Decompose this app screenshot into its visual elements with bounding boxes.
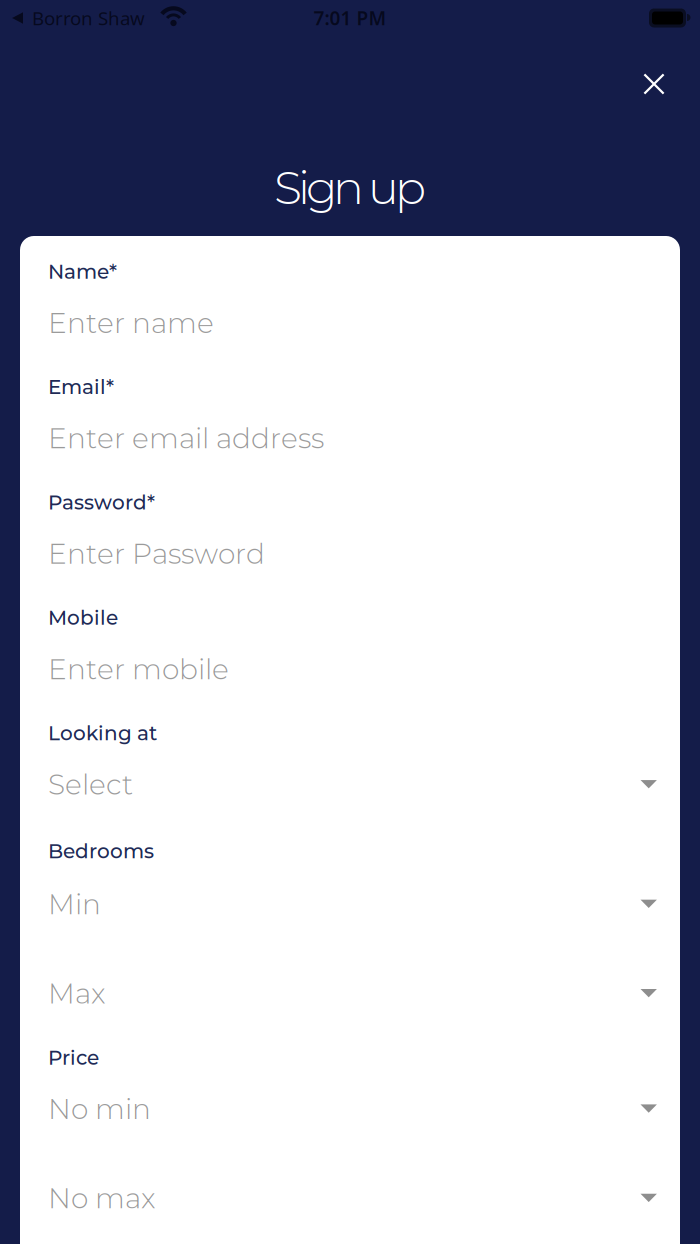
staticText: Name* bbox=[48, 259, 117, 284]
staticText: Looking at bbox=[48, 721, 157, 745]
staticText: Sign up bbox=[274, 159, 426, 216]
button[interactable]: No max bbox=[48, 1181, 657, 1215]
staticText: Enter name bbox=[48, 306, 214, 340]
button[interactable]: Borron Shaw bbox=[12, 5, 145, 31]
staticText: Price bbox=[48, 1045, 99, 1070]
staticText: Select bbox=[48, 767, 133, 802]
button[interactable]: Min bbox=[48, 887, 657, 921]
button[interactable]: Enter name bbox=[48, 306, 657, 340]
staticText: Mobile bbox=[48, 605, 118, 630]
staticText: Email* bbox=[48, 375, 114, 399]
staticText: Borron Shaw bbox=[32, 5, 145, 31]
button[interactable] bbox=[644, 74, 664, 94]
staticText: 7:01 PM bbox=[313, 5, 386, 31]
staticText: Enter Password bbox=[48, 537, 265, 571]
staticText: No max bbox=[48, 1181, 156, 1215]
staticText: Enter email address bbox=[48, 421, 324, 455]
button[interactable]: Enter mobile bbox=[48, 652, 657, 686]
button[interactable]: Enter email address bbox=[48, 421, 657, 455]
staticText: Password* bbox=[48, 490, 155, 514]
staticText: No min bbox=[48, 1092, 151, 1126]
button[interactable]: Enter Password bbox=[48, 537, 657, 571]
staticText: Max bbox=[48, 976, 106, 1010]
button[interactable]: No min bbox=[48, 1092, 657, 1126]
staticText: Enter mobile bbox=[48, 652, 229, 686]
button[interactable]: Max bbox=[48, 976, 657, 1010]
staticText: Min bbox=[48, 887, 101, 921]
button[interactable]: Select bbox=[48, 767, 657, 802]
staticText: Bedrooms bbox=[48, 839, 154, 863]
